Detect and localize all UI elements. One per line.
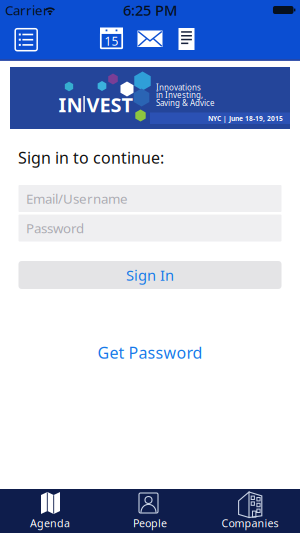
staticText: 15 [104, 33, 118, 49]
button[interactable]: Agenda [0, 489, 100, 533]
staticText: Get Password [97, 342, 202, 363]
button[interactable]: Calendar [100, 27, 123, 49]
staticText: Innovations [156, 82, 201, 93]
staticText: Password [26, 219, 84, 237]
button[interactable]: Sign In [18, 261, 281, 289]
staticText: Agenda [30, 516, 70, 530]
staticText: in Investing, [156, 90, 203, 100]
button[interactable]: Companies [200, 489, 300, 533]
button[interactable]: Notes [178, 28, 194, 50]
staticText: People [133, 516, 167, 530]
staticText: Carrier [5, 1, 49, 19]
staticText: Sign In [126, 265, 174, 285]
button[interactable]: Messages [137, 30, 162, 47]
staticText: Sign in to continue: [18, 147, 164, 168]
staticText: NYC | June 18-19, 2015 [208, 114, 283, 123]
staticText: VEST [86, 91, 133, 118]
button[interactable]: Get Password [97, 342, 202, 363]
staticText: Email/Username [26, 190, 128, 207]
staticText: Saving & Advice [156, 98, 215, 108]
staticText: IN [58, 91, 82, 118]
staticText: 6:25 PM [123, 0, 177, 20]
staticText: Companies [221, 516, 278, 530]
button[interactable]: People [100, 489, 200, 533]
button[interactable]: My List [15, 29, 37, 51]
